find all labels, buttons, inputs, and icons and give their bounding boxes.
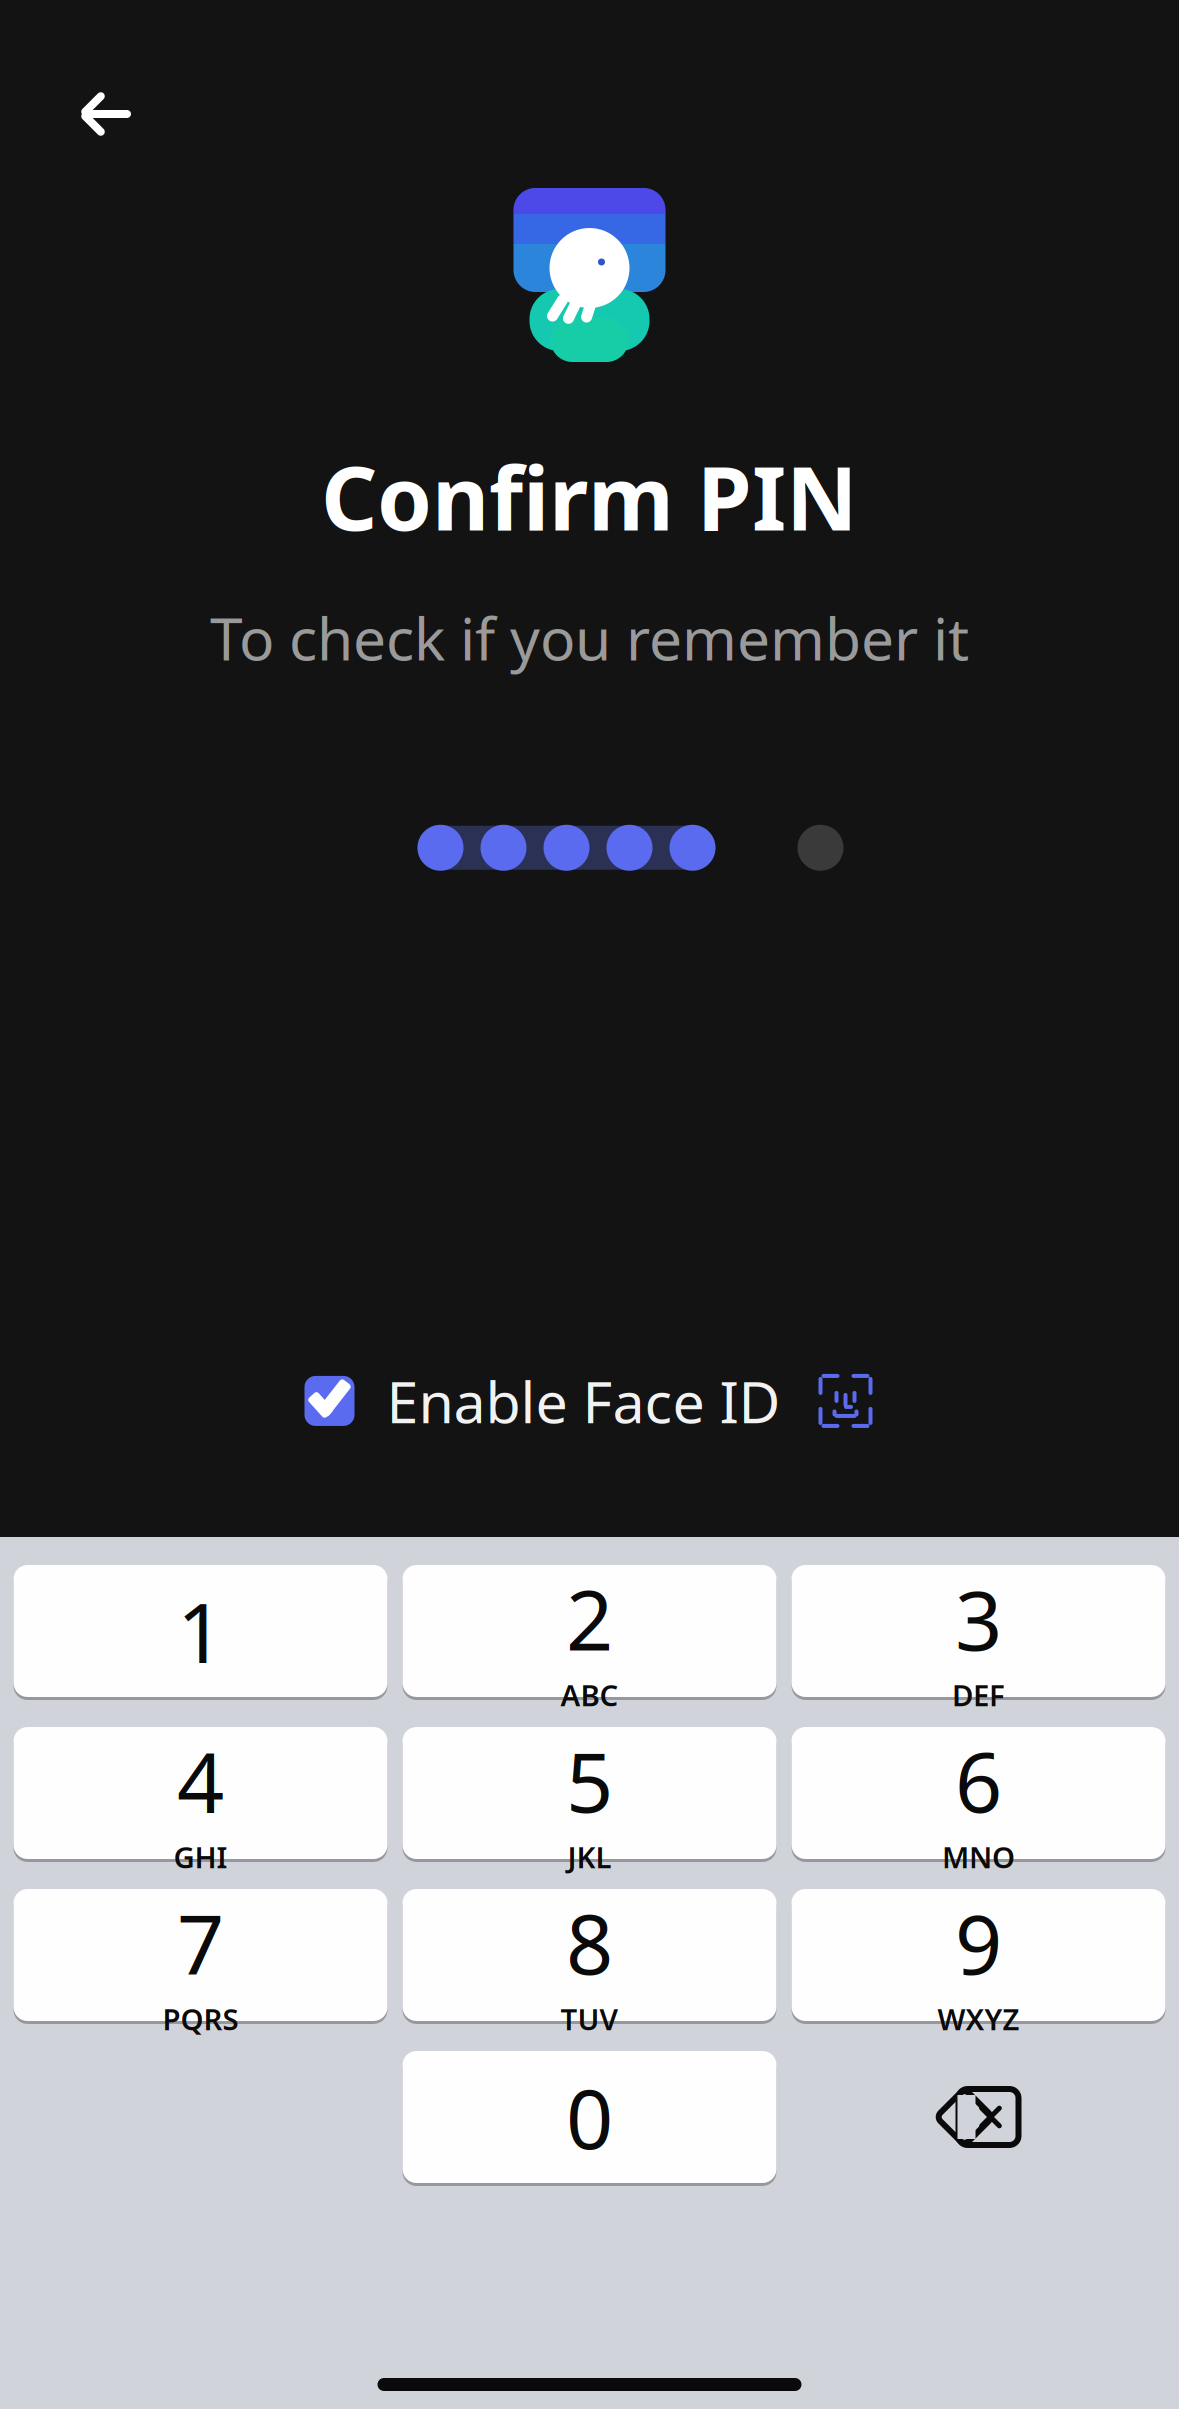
staticText: ABC [560,1675,618,1714]
staticText: DEF [952,1675,1005,1714]
staticText: Enable Face ID [386,1363,780,1439]
button[interactable]: 8 [402,1889,776,2021]
staticText: WXYZ [937,1999,1019,2038]
staticText: 7 [177,1888,224,1997]
button[interactable]: Delete [791,2051,1165,2183]
button[interactable]: 0 [402,2051,776,2183]
staticText: PQRS [162,1999,238,2038]
button[interactable]: Back [52,62,156,166]
staticText: GHI [173,1837,227,1876]
staticText: To check if you remember it [210,599,969,677]
button[interactable]: 1 [13,1565,387,1697]
button[interactable]: 6 [791,1727,1165,1859]
staticText: Confirm PIN [321,438,858,555]
staticText: 1 [177,1576,224,1686]
button[interactable]: 3 [791,1565,1165,1697]
staticText: TUV [560,1999,618,2038]
button[interactable]: 2 [402,1565,776,1697]
staticText: 5 [566,1726,613,1835]
staticText: 2 [566,1564,613,1673]
staticText: 8 [566,1888,613,1997]
staticText: MNO [942,1837,1015,1876]
staticText: 3 [955,1564,1002,1673]
button[interactable]: 4 [13,1727,387,1859]
button[interactable]: 7 [13,1889,387,2021]
button[interactable]: Enable Face ID [304,1363,874,1439]
staticText: 4 [177,1726,224,1835]
staticText: 9 [955,1888,1002,1997]
staticText: 0 [566,2062,613,2172]
button[interactable]: 5 [402,1727,776,1859]
staticText: JKL [567,1837,611,1876]
button[interactable]: 9 [791,1889,1165,2021]
staticText: 6 [955,1726,1002,1835]
